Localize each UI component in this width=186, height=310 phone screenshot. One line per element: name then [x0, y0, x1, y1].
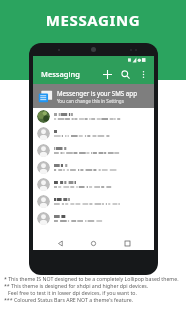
button[interactable] [33, 142, 154, 159]
button[interactable] [33, 125, 154, 142]
button[interactable] [33, 193, 154, 210]
staticText: ** This theme is designed for xhdpi and … [4, 282, 149, 289]
button[interactable] [33, 159, 154, 176]
staticText: Feel free to test it in lower dpi device… [4, 289, 137, 296]
button[interactable]: More options [134, 65, 152, 83]
staticText: *** Coloured Status Bars ARE NOT a theme… [4, 296, 134, 303]
button[interactable]: Recents [121, 237, 134, 250]
button[interactable]: Messenger is your SMS app [33, 84, 154, 108]
staticText: MESSAGING [0, 10, 186, 30]
button[interactable]: Search [116, 65, 134, 83]
button[interactable] [33, 108, 154, 125]
staticText: Messenger is your SMS app [57, 89, 137, 97]
staticText: Messaging [41, 69, 80, 79]
button[interactable]: Home [87, 237, 100, 250]
button[interactable] [33, 176, 154, 193]
button[interactable]: New conversation [98, 65, 116, 83]
button[interactable]: Back [54, 237, 67, 250]
staticText: * This theme IS NOT designed to be a com… [4, 275, 179, 282]
button[interactable] [33, 210, 154, 227]
staticText: You can change this in Settings [57, 98, 124, 104]
